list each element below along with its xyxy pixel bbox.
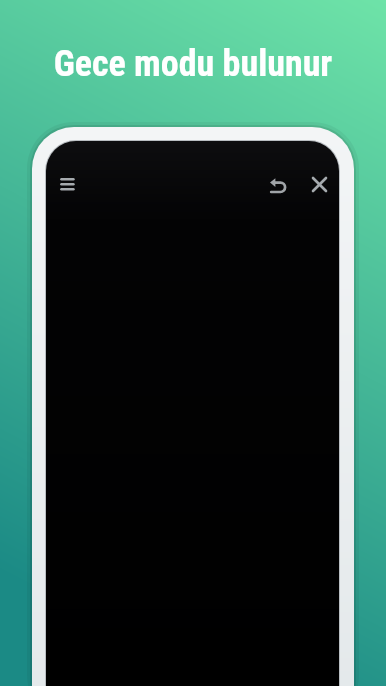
staticText: Gece modu bulunur xyxy=(0,43,386,85)
button[interactable] xyxy=(306,171,332,197)
button[interactable] xyxy=(265,172,291,198)
button[interactable] xyxy=(54,171,80,197)
